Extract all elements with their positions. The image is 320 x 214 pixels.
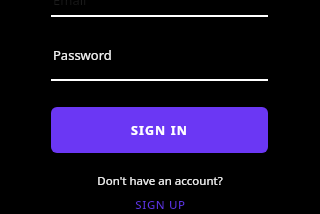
staticText: SIGN UP: [135, 197, 186, 213]
button[interactable]: Password: [51, 20, 268, 80]
staticText: Email: [53, 0, 87, 9]
button[interactable]: Email: [53, 0, 87, 9]
button[interactable]: SIGN UP: [0, 195, 320, 214]
button[interactable]: SIGN IN: [51, 107, 268, 153]
staticText: SIGN IN: [131, 122, 188, 139]
staticText: Don't have an account?: [97, 173, 223, 189]
staticText: Password: [53, 46, 112, 64]
